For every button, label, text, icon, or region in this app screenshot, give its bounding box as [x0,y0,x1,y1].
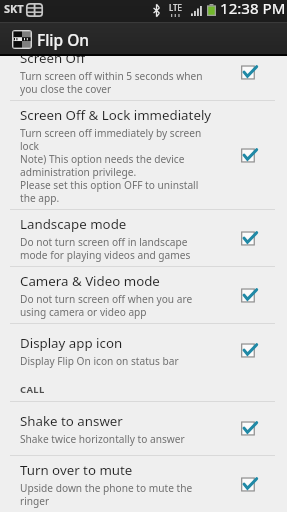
button[interactable]: Screen Off & Lock immediately [0,101,287,209]
button[interactable]: Screen Off [0,44,287,100]
button[interactable]: Flip On [0,22,287,56]
button[interactable]: Toggle option [237,144,261,168]
staticText: Turn over to mute [20,461,133,479]
button[interactable]: Shake to answer [0,402,287,455]
staticText: Turn screen off within 5 seconds when yo… [20,69,216,96]
staticText: LTE [169,2,182,13]
staticText: SKT [4,1,24,16]
button[interactable]: Camera & Video mode [0,267,287,323]
button[interactable]: Toggle option [237,417,261,441]
staticText: Do not turn screen off when you are usin… [20,292,216,319]
staticText: Screen Off [20,49,86,67]
staticText: Screen Off & Lock immediately [20,106,212,124]
button[interactable]: Toggle option [237,284,261,308]
staticText: Do not turn screen off in landscape mode… [20,235,216,262]
staticText: Turn screen off immediately by screen lo… [20,126,216,205]
staticText: Upside down the phone to mute the ringer [20,481,216,508]
staticText: Display Flip On icon on status bar [20,354,179,368]
staticText: Shake to answer [20,412,123,430]
staticText: Shake twice horizontally to answer [20,432,185,446]
button[interactable]: Toggle option [237,473,261,497]
staticText: Display app icon [20,334,123,352]
staticText: Landscape mode [20,215,127,233]
staticText: CALL [20,383,45,396]
button[interactable]: Display app icon [0,324,287,377]
button[interactable]: Toggle option [237,227,261,251]
button[interactable]: Toggle option [237,339,261,363]
button[interactable]: Landscape mode [0,210,287,266]
button[interactable]: Toggle option [237,61,261,85]
staticText: Flip On [37,29,90,50]
staticText: 12:38 PM [220,0,286,19]
staticText: Camera & Video mode [20,272,160,290]
button[interactable]: Turn over to mute [0,456,287,512]
